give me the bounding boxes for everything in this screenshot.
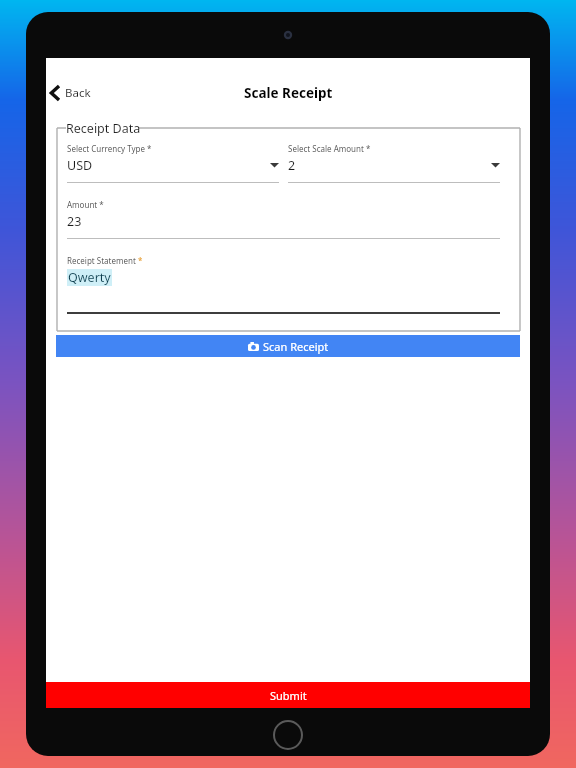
button[interactable]: Select Currency Type * — [67, 143, 279, 183]
button[interactable]: Select Scale Amount * — [288, 143, 500, 183]
button[interactable]: Amount * — [67, 199, 500, 239]
staticText: * — [138, 255, 143, 266]
staticText: Submit — [270, 688, 307, 703]
button[interactable]: Submit — [46, 682, 530, 708]
staticText: Scale Receipt — [244, 84, 333, 102]
staticText: Qwerty — [68, 269, 111, 286]
staticText: Receipt Statement — [67, 255, 136, 266]
staticText: Receipt Data — [66, 120, 141, 137]
staticText: Amount * — [67, 199, 104, 210]
staticText: USD — [67, 157, 93, 174]
staticText: 23 — [67, 213, 82, 230]
staticText: Select Scale Amount * — [288, 143, 371, 154]
button[interactable]: Receipt Statement — [67, 255, 500, 314]
button[interactable]: Scan Receipt — [56, 335, 520, 357]
staticText: Select Currency Type * — [67, 143, 152, 154]
staticText: 2 — [288, 157, 296, 174]
button[interactable]: Back — [46, 79, 101, 107]
staticText: Scan Receipt — [263, 339, 329, 354]
staticText: Back — [65, 85, 91, 101]
